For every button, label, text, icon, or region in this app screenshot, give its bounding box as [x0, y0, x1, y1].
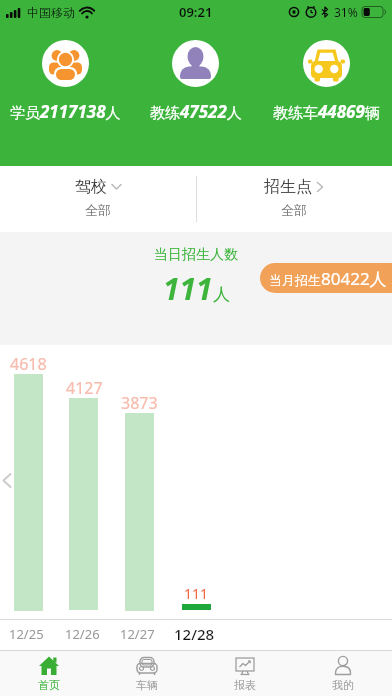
staticText: 教练车44869辆: [273, 100, 380, 123]
button[interactable]: 车辆: [98, 651, 196, 696]
staticText: 全部: [85, 202, 111, 218]
button[interactable]: 报表: [196, 651, 294, 696]
button[interactable]: 12/25: [0, 623, 61, 645]
button[interactable]: 首页: [0, 651, 98, 696]
staticText: 人: [213, 284, 230, 305]
staticText: 全部: [281, 202, 307, 218]
staticText: 报表: [234, 678, 256, 692]
staticText: 4127: [66, 377, 103, 399]
button[interactable]: 教练车44869辆: [261, 40, 392, 123]
staticText: 教练47522人: [150, 100, 242, 123]
staticText: 学员2117138人: [10, 100, 121, 123]
staticText: 111: [163, 268, 213, 309]
button[interactable]: 教练47522人: [130, 40, 261, 123]
staticText: 12/27: [120, 625, 155, 643]
staticText: 12/26: [65, 625, 100, 643]
button[interactable]: 招生点: [196, 166, 392, 232]
button[interactable]: 12/26: [47, 623, 117, 645]
staticText: 驾校: [75, 177, 107, 197]
button[interactable]: 我的: [294, 651, 392, 696]
staticText: 当月招生80422人: [269, 267, 387, 290]
staticText: 当日招生人数: [154, 246, 238, 264]
button[interactable]: 12/27: [102, 623, 172, 645]
staticText: 招生点: [264, 177, 312, 197]
staticText: 车辆: [136, 678, 158, 692]
staticText: 12/28: [174, 624, 215, 644]
button[interactable]: 学员2117138人: [0, 40, 130, 123]
staticText: 31%: [334, 4, 358, 20]
staticText: 3873: [121, 392, 158, 414]
staticText: 12/25: [9, 625, 44, 643]
staticText: 首页: [38, 678, 60, 692]
staticText: 111: [184, 584, 209, 603]
button[interactable]: 12/28: [159, 623, 229, 645]
button[interactable]: 驾校: [0, 166, 196, 232]
staticText: 09:21: [179, 3, 213, 21]
button[interactable]: 当月招生80422人: [260, 263, 392, 293]
staticText: 中国移动: [27, 5, 75, 20]
staticText: 4618: [10, 353, 47, 375]
staticText: 我的: [332, 678, 354, 692]
